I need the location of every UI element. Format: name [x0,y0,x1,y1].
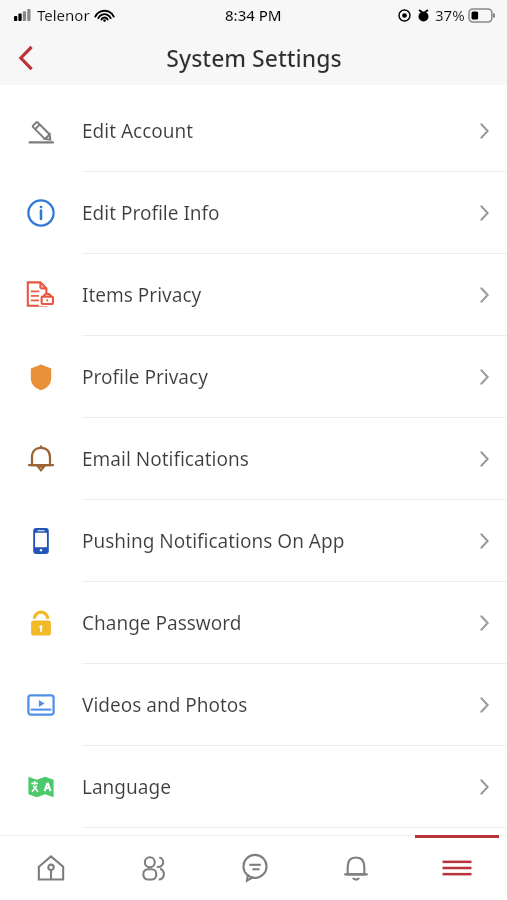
button[interactable]: Profile Privacy [0,336,507,417]
button[interactable]: Edit Account [0,90,507,171]
staticText: Language [82,774,462,800]
staticText: Profile Privacy [82,364,462,390]
staticText: Videos and Photos [82,692,462,718]
button[interactable]: Email Notifications [0,418,507,499]
button[interactable]: Pushing Notifications On App [0,500,507,581]
button[interactable]: Language [0,746,507,827]
staticText: Pushing Notifications On App [82,528,462,554]
button[interactable]: Notifications [305,835,406,900]
staticText: Edit Profile Info [82,200,462,226]
staticText: Change Password [82,610,462,636]
button[interactable]: Messages [204,835,305,900]
button[interactable]: Back [0,30,52,85]
button[interactable]: Edit Profile Info [0,172,507,253]
button[interactable]: Menu [406,835,507,900]
staticText: Telenor [37,5,90,25]
staticText: System Settings [166,42,342,73]
button[interactable]: Home [0,835,102,900]
button[interactable]: Videos and Photos [0,664,507,745]
staticText: 37% [435,5,465,25]
button[interactable]: Items Privacy [0,254,507,335]
staticText: 8:34 PM [225,5,282,25]
staticText: Edit Account [82,118,462,144]
button[interactable]: People [102,835,204,900]
staticText: Email Notifications [82,446,462,472]
button[interactable]: Change Password [0,582,507,663]
staticText: Items Privacy [82,282,462,308]
